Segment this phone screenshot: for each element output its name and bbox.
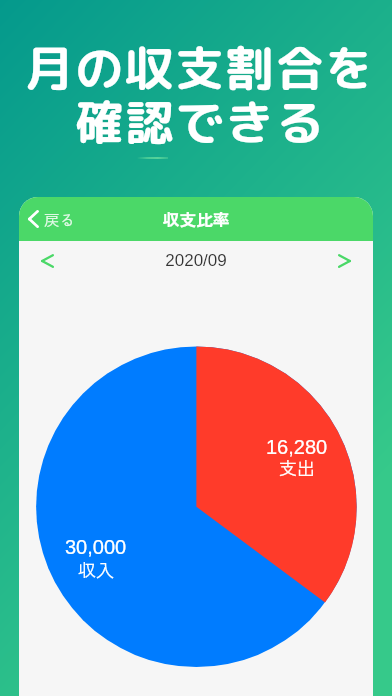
staticText: 支出 [279,454,315,480]
staticText: 戻る [44,208,76,230]
staticText: 2020/09 [76,251,316,270]
staticText: 16,280 [266,436,328,458]
staticText: 収入 [78,556,114,582]
staticText: 収支比率 [163,207,230,231]
staticText: 30,000 [65,536,127,558]
button[interactable]: Next month [316,241,373,280]
staticText: 月の収支割合を 確認できる [25,34,376,156]
button[interactable]: Previous month [19,241,76,280]
button[interactable]: 戻る [19,197,86,241]
